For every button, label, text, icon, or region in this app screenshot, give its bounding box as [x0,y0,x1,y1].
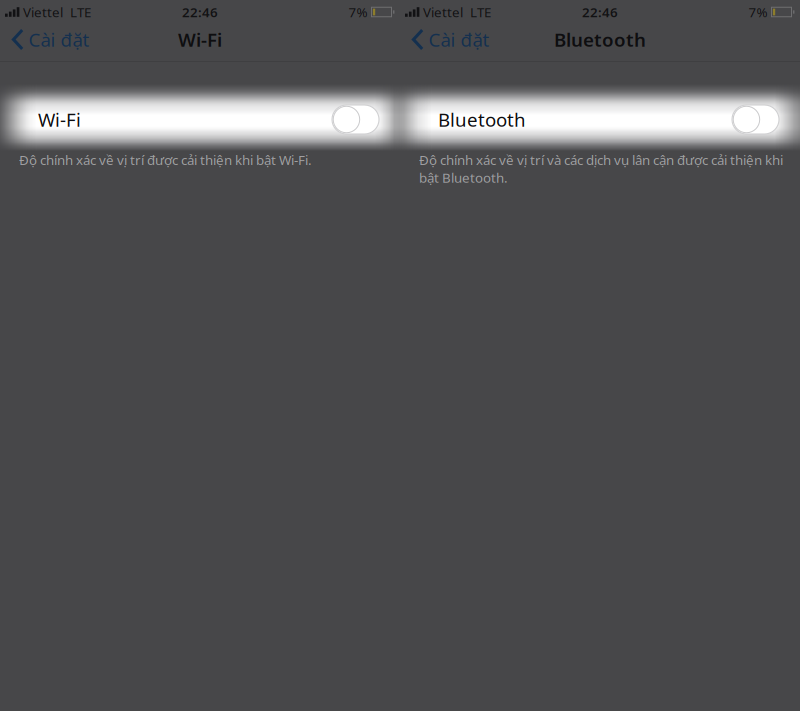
staticText: Độ chính xác về vị trí và các dịch vụ lâ… [419,151,783,186]
staticText: Cài đặt [29,27,90,52]
button[interactable]: Bluetooth [400,102,800,136]
staticText: 22:46 [582,3,618,21]
staticText: Viettel [423,3,463,21]
staticText: 7% [348,3,367,21]
staticText: Viettel [23,3,63,21]
staticText: Bluetooth [554,27,646,52]
staticText: Cài đặt [429,27,490,52]
staticText: LTE [470,3,491,21]
button[interactable]: Cài đặt [400,24,500,55]
staticText: 22:46 [182,3,218,21]
button[interactable]: Wi-Fi [0,102,400,136]
staticText: Độ chính xác về vị trí được cải thiện kh… [19,151,312,169]
staticText: Wi-Fi [38,107,81,132]
staticText: 7% [748,3,767,21]
staticText: Bluetooth [438,107,526,132]
staticText: LTE [70,3,91,21]
button[interactable]: Cài đặt [0,24,100,55]
staticText: Wi-Fi [178,27,222,52]
